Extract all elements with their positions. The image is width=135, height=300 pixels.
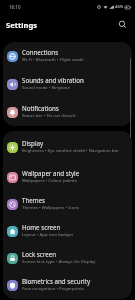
- staticText: 16:10: [9, 4, 21, 10]
- staticText: Themes • Wallpapers • Icons: [22, 204, 79, 210]
- button[interactable]: Wallpaper and style: [3, 164, 132, 191]
- button[interactable]: Search: [114, 16, 130, 32]
- staticText: Lock screen: [22, 250, 57, 258]
- button[interactable]: Sounds and vibration: [3, 70, 132, 98]
- button[interactable]: Home screen: [3, 218, 132, 245]
- staticText: Layout • App icon badges: [22, 231, 74, 237]
- staticText: Wallpapers • Colour palette: [22, 177, 78, 183]
- button[interactable]: Biometrics and security: [3, 272, 132, 299]
- button[interactable]: Themes: [3, 191, 132, 218]
- staticText: Connections: [22, 48, 59, 56]
- staticText: 46%: [115, 4, 124, 10]
- staticText: Settings: [6, 20, 38, 30]
- staticText: Notifications: [22, 104, 59, 112]
- staticText: Sounds and vibration: [22, 76, 84, 84]
- staticText: Wi-Fi • Bluetooth • Flight mode: [22, 56, 84, 62]
- staticText: Display: [22, 139, 44, 147]
- staticText: Biometrics and security: [22, 277, 91, 285]
- button[interactable]: Display: [3, 131, 132, 164]
- staticText: Home screen: [22, 223, 61, 231]
- staticText: Sound mode • Ringtone: [22, 84, 70, 90]
- button[interactable]: Connections: [3, 42, 132, 70]
- staticText: Status bar • Do not disturb: [22, 112, 76, 118]
- button[interactable]: Lock screen: [3, 245, 132, 272]
- button[interactable]: Notifications: [3, 98, 132, 126]
- staticText: Brightness • Eye comfort shield • Naviga…: [22, 147, 119, 153]
- staticText: Face recognition • Fingerprints: [22, 285, 84, 291]
- staticText: Screen lock type • Always On Display: [22, 258, 96, 264]
- staticText: Themes: [22, 196, 45, 204]
- staticText: Wallpaper and style: [22, 169, 80, 177]
